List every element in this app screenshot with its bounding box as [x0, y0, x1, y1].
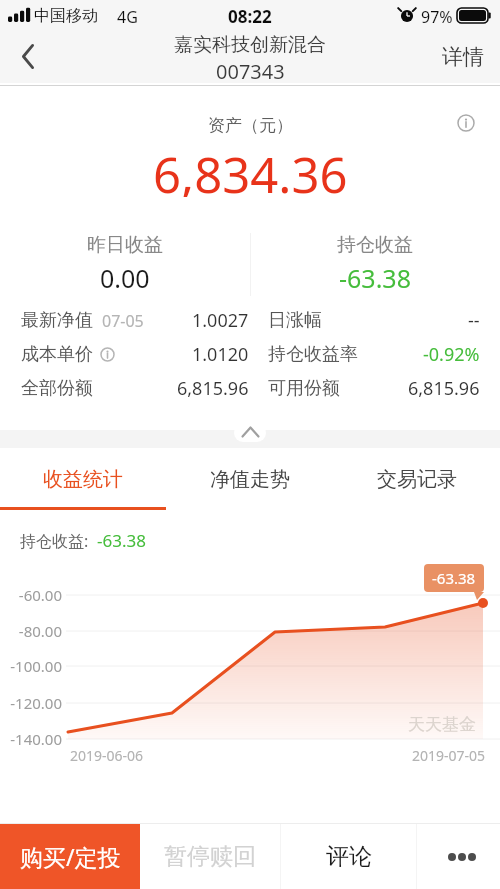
button[interactable]: Collapse — [0, 430, 500, 448]
button[interactable]: Info — [454, 111, 478, 135]
staticText: 嘉实科技创新混合 — [174, 33, 326, 57]
button[interactable]: 评论 — [281, 824, 416, 889]
staticText: 详情 — [442, 44, 484, 70]
staticText: 2019-07-05 — [412, 746, 486, 765]
staticText: 资产（元） — [208, 115, 293, 136]
button[interactable]: 净值走势 — [166, 448, 333, 510]
staticText: 昨日收益 — [87, 233, 163, 257]
staticText: -140.00 — [10, 729, 62, 749]
staticText: 6,815.96 — [408, 376, 480, 401]
button[interactable]: 收益统计 — [0, 448, 166, 510]
staticText: 日涨幅 — [268, 309, 322, 332]
button[interactable]: 交易记录 — [333, 448, 500, 510]
button[interactable]: 暂停赎回 — [140, 824, 280, 889]
staticText: -80.00 — [18, 621, 62, 641]
staticText: 0.00 — [100, 261, 150, 295]
staticText: -63.38 — [339, 261, 411, 295]
staticText: 97% — [421, 6, 453, 28]
staticText: 08:22 — [228, 5, 272, 28]
staticText: 6,815.96 — [177, 376, 249, 401]
staticText: 1.0027 — [192, 308, 249, 333]
staticText: 天天基金 — [408, 714, 476, 735]
staticText: 最新净值 — [21, 309, 93, 332]
staticText: 净值走势 — [210, 467, 290, 492]
staticText: 暂停赎回 — [164, 842, 256, 871]
staticText: -63.38 — [432, 568, 476, 588]
staticText: 1.0120 — [192, 342, 249, 367]
staticText: -0.92% — [423, 342, 480, 367]
staticText: 持仓收益: — [20, 530, 89, 552]
staticText: -63.38 — [97, 529, 146, 552]
staticText: 2019-06-06 — [70, 746, 144, 765]
staticText: -100.00 — [10, 656, 62, 676]
button[interactable]: More — [417, 824, 500, 889]
staticText: 评论 — [326, 842, 372, 871]
staticText: 中国移动 — [34, 6, 98, 26]
staticText: 6,834.36 — [153, 141, 348, 197]
staticText: 交易记录 — [377, 467, 457, 492]
button[interactable]: 详情 — [442, 30, 484, 83]
staticText: 持仓收益率 — [268, 343, 358, 366]
staticText: 购买/定投 — [20, 841, 121, 872]
staticText: 07-05 — [102, 310, 144, 332]
staticText: 007343 — [216, 58, 285, 85]
staticText: 可用份额 — [268, 377, 340, 400]
staticText: -- — [468, 308, 480, 333]
staticText: 收益统计 — [43, 467, 123, 492]
button[interactable]: 购买/定投 — [0, 824, 140, 889]
staticText: 成本单价 — [21, 343, 93, 366]
staticText: -60.00 — [18, 585, 62, 605]
button[interactable]: Back — [0, 30, 56, 83]
staticText: 4G — [117, 6, 138, 28]
staticText: 全部份额 — [21, 377, 93, 400]
staticText: 持仓收益 — [337, 233, 413, 257]
staticText: -120.00 — [10, 693, 62, 713]
